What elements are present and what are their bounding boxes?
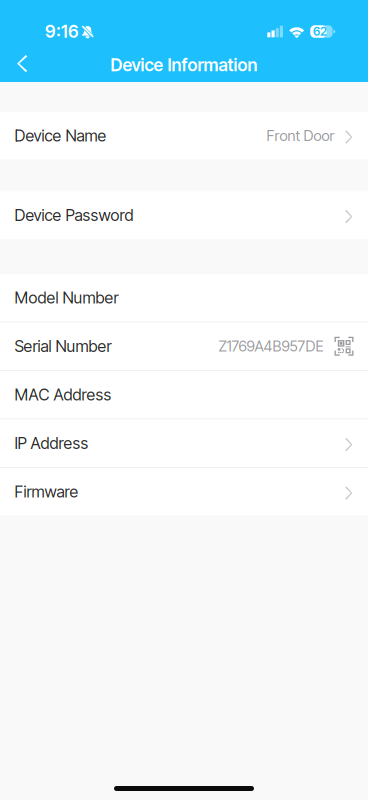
staticText: Device Password: [14, 206, 133, 225]
button[interactable]: Device Password: [0, 191, 368, 239]
staticText: Firmware: [14, 482, 78, 501]
button[interactable]: Back: [0, 48, 45, 82]
staticText: Z1769A4B957DE: [218, 337, 323, 355]
button[interactable]: Firmware: [0, 468, 368, 515]
staticText: Front Door: [266, 127, 334, 145]
staticText: 62: [313, 24, 327, 39]
staticText: Device Name: [14, 126, 106, 145]
staticText: 9:16: [45, 21, 79, 42]
staticText: Serial Number: [14, 337, 111, 356]
button[interactable]: MAC Address: [0, 371, 368, 418]
staticText: IP Address: [14, 434, 88, 453]
staticText: Model Number: [14, 288, 118, 307]
staticText: MAC Address: [14, 385, 111, 404]
button[interactable]: Serial Number: [0, 322, 368, 370]
button[interactable]: Model Number: [0, 274, 368, 321]
button[interactable]: IP Address: [0, 419, 368, 467]
staticText: Device Information: [110, 54, 257, 75]
button[interactable]: Device Name: [0, 112, 368, 159]
